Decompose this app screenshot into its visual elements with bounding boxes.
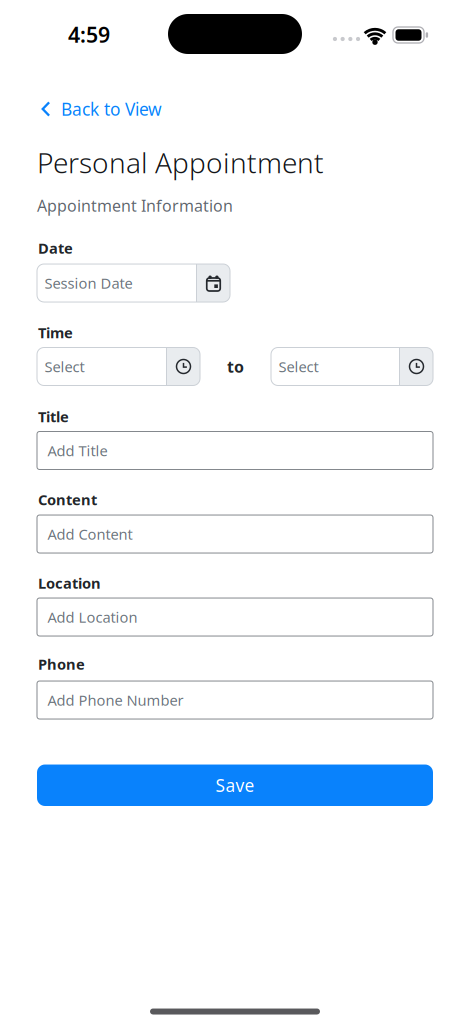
staticText: to — [227, 356, 244, 377]
staticText: Title — [38, 407, 69, 426]
staticText: Add Title — [47, 441, 107, 460]
staticText: Select — [44, 357, 84, 376]
staticText: Select — [278, 357, 318, 376]
staticText: Back to View — [61, 97, 162, 120]
button[interactable]: Add Content — [37, 515, 433, 553]
staticText: Session Date — [44, 273, 132, 293]
button[interactable]: Select — [37, 347, 200, 385]
staticText: Add Phone Number — [47, 690, 183, 710]
button[interactable]: Add Title — [37, 431, 433, 469]
staticText: Date — [38, 238, 73, 258]
button[interactable]: Back to View — [0, 0, 471, 1024]
staticText: Save — [215, 774, 254, 797]
staticText: Time — [38, 323, 73, 342]
staticText: Phone — [38, 654, 85, 674]
button[interactable]: Session Date — [37, 264, 230, 302]
button[interactable]: Add Phone Number — [37, 681, 433, 719]
button[interactable]: Select — [271, 347, 433, 385]
button[interactable]: Add Location — [37, 598, 433, 636]
staticText: Content — [38, 490, 97, 509]
button[interactable]: Save — [37, 764, 433, 806]
staticText: Add Location — [47, 607, 137, 627]
staticText: Add Content — [47, 524, 132, 544]
staticText: Appointment Information — [37, 195, 233, 216]
staticText: Location — [38, 573, 101, 593]
staticText: Personal Appointment — [37, 144, 324, 181]
staticText: 4:59 — [68, 20, 110, 49]
